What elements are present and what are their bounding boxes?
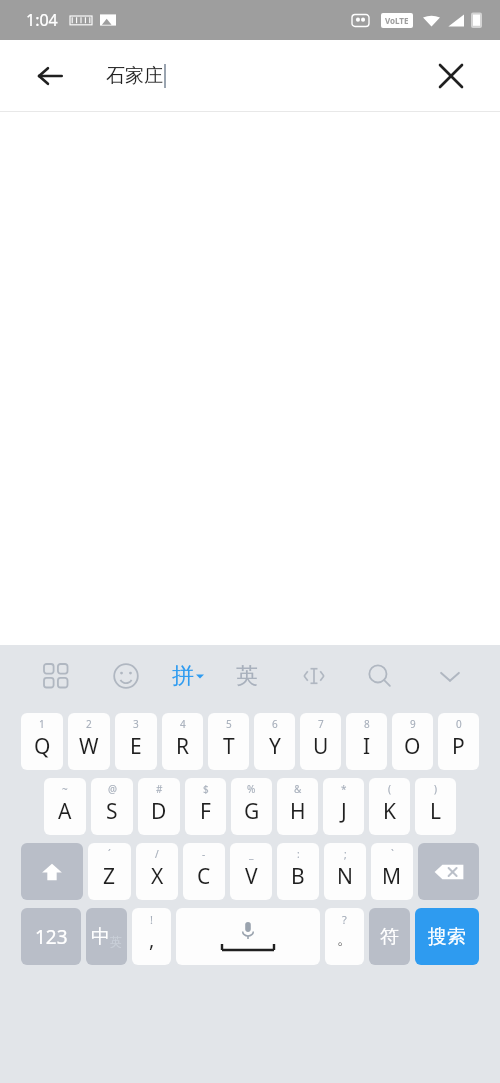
staticText: 8 bbox=[364, 717, 370, 731]
button[interactable]: 符 bbox=[369, 908, 410, 965]
button[interactable]: Back bbox=[26, 52, 74, 100]
staticText: ´ bbox=[108, 847, 111, 861]
staticText: VoLTE bbox=[385, 15, 409, 26]
staticText: E bbox=[130, 732, 142, 761]
staticText: # bbox=[156, 782, 163, 796]
button[interactable]: * bbox=[323, 778, 364, 835]
button[interactable]: Space bbox=[176, 908, 320, 965]
button[interactable]: 拼 bbox=[172, 662, 204, 690]
button[interactable]: _ bbox=[230, 843, 272, 900]
button[interactable]: Keyboard layouts bbox=[34, 654, 78, 698]
staticText: ! bbox=[150, 912, 153, 927]
staticText: X bbox=[151, 862, 164, 891]
staticText: ? bbox=[342, 912, 347, 927]
staticText: C bbox=[197, 862, 211, 891]
staticText: $ bbox=[203, 782, 209, 796]
staticText: P bbox=[452, 732, 465, 761]
staticText: H bbox=[290, 797, 306, 826]
button[interactable]: : bbox=[277, 843, 319, 900]
staticText: S bbox=[106, 797, 118, 826]
staticText: M bbox=[382, 862, 402, 891]
button[interactable]: $ bbox=[185, 778, 226, 835]
button[interactable]: - bbox=[183, 843, 225, 900]
button[interactable]: 中 bbox=[86, 908, 127, 965]
button[interactable]: ! bbox=[132, 908, 171, 965]
button[interactable]: 7 bbox=[300, 713, 341, 770]
staticText: Y bbox=[269, 732, 281, 761]
button[interactable]: 8 bbox=[346, 713, 387, 770]
staticText: Z bbox=[103, 862, 116, 891]
button[interactable]: ; bbox=[324, 843, 366, 900]
staticText: W bbox=[79, 732, 99, 761]
staticText: ; bbox=[344, 847, 347, 861]
button[interactable]: Search bbox=[358, 654, 402, 698]
staticText: _ bbox=[249, 847, 254, 861]
button[interactable]: 1 bbox=[21, 713, 63, 770]
staticText: T bbox=[223, 732, 235, 761]
staticText: N bbox=[337, 862, 353, 891]
staticText: J bbox=[341, 797, 347, 826]
staticText: Q bbox=[34, 732, 51, 761]
staticText: U bbox=[313, 732, 329, 761]
staticText: 2 bbox=[86, 717, 92, 731]
button[interactable]: 搜索 bbox=[415, 908, 479, 965]
button[interactable]: 3 bbox=[115, 713, 157, 770]
staticText: ~ bbox=[62, 782, 68, 796]
staticText: @ bbox=[108, 782, 117, 796]
staticText: I bbox=[363, 732, 371, 761]
button[interactable]: Clear bbox=[428, 53, 474, 99]
button[interactable]: ´ bbox=[88, 843, 131, 900]
button[interactable]: Emoji bbox=[104, 654, 148, 698]
staticText: B bbox=[291, 862, 305, 891]
staticText: ( bbox=[388, 782, 391, 796]
button[interactable]: 英 bbox=[236, 662, 258, 690]
staticText: 搜索 bbox=[428, 925, 466, 949]
staticText: & bbox=[294, 782, 302, 796]
staticText: , bbox=[149, 926, 155, 953]
button[interactable]: ( bbox=[369, 778, 410, 835]
button[interactable]: 6 bbox=[254, 713, 295, 770]
button[interactable]: 123 bbox=[21, 908, 81, 965]
staticText: ` bbox=[391, 847, 394, 861]
staticText: : bbox=[297, 847, 300, 861]
staticText: 1:04 bbox=[26, 9, 58, 31]
staticText: 拼 bbox=[172, 662, 194, 690]
staticText: L bbox=[430, 797, 442, 826]
staticText: 。 bbox=[337, 930, 352, 949]
staticText: A bbox=[58, 797, 72, 826]
staticText: - bbox=[202, 847, 206, 861]
button[interactable]: 2 bbox=[68, 713, 110, 770]
staticText: 0 bbox=[456, 717, 462, 731]
button[interactable]: Shift bbox=[21, 843, 83, 900]
button[interactable]: ~ bbox=[44, 778, 86, 835]
staticText: * bbox=[341, 782, 347, 796]
staticText: 4 bbox=[180, 717, 186, 731]
button[interactable]: ) bbox=[415, 778, 456, 835]
button[interactable]: % bbox=[231, 778, 272, 835]
staticText: 中 bbox=[91, 925, 110, 949]
button[interactable]: 0 bbox=[438, 713, 479, 770]
button[interactable]: @ bbox=[91, 778, 133, 835]
button[interactable]: Backspace bbox=[418, 843, 479, 900]
staticText: 9 bbox=[410, 717, 416, 731]
staticText: ) bbox=[434, 782, 437, 796]
button[interactable]: / bbox=[136, 843, 178, 900]
staticText: K bbox=[383, 797, 396, 826]
button[interactable]: # bbox=[138, 778, 180, 835]
button[interactable]: 9 bbox=[392, 713, 433, 770]
button[interactable]: ? bbox=[325, 908, 364, 965]
button[interactable]: & bbox=[277, 778, 318, 835]
staticText: R bbox=[176, 732, 190, 761]
staticText: 3 bbox=[133, 717, 139, 731]
button[interactable]: Move cursor bbox=[292, 654, 336, 698]
button[interactable]: 5 bbox=[208, 713, 249, 770]
staticText: V bbox=[245, 862, 258, 891]
staticText: 1 bbox=[39, 717, 45, 731]
staticText: 符 bbox=[380, 925, 399, 949]
button[interactable]: ` bbox=[371, 843, 413, 900]
staticText: 英 bbox=[236, 662, 258, 690]
button[interactable]: 4 bbox=[162, 713, 203, 770]
button[interactable]: Hide keyboard bbox=[428, 654, 472, 698]
staticText: 石家庄 bbox=[106, 64, 163, 88]
staticText: 123 bbox=[35, 924, 68, 950]
